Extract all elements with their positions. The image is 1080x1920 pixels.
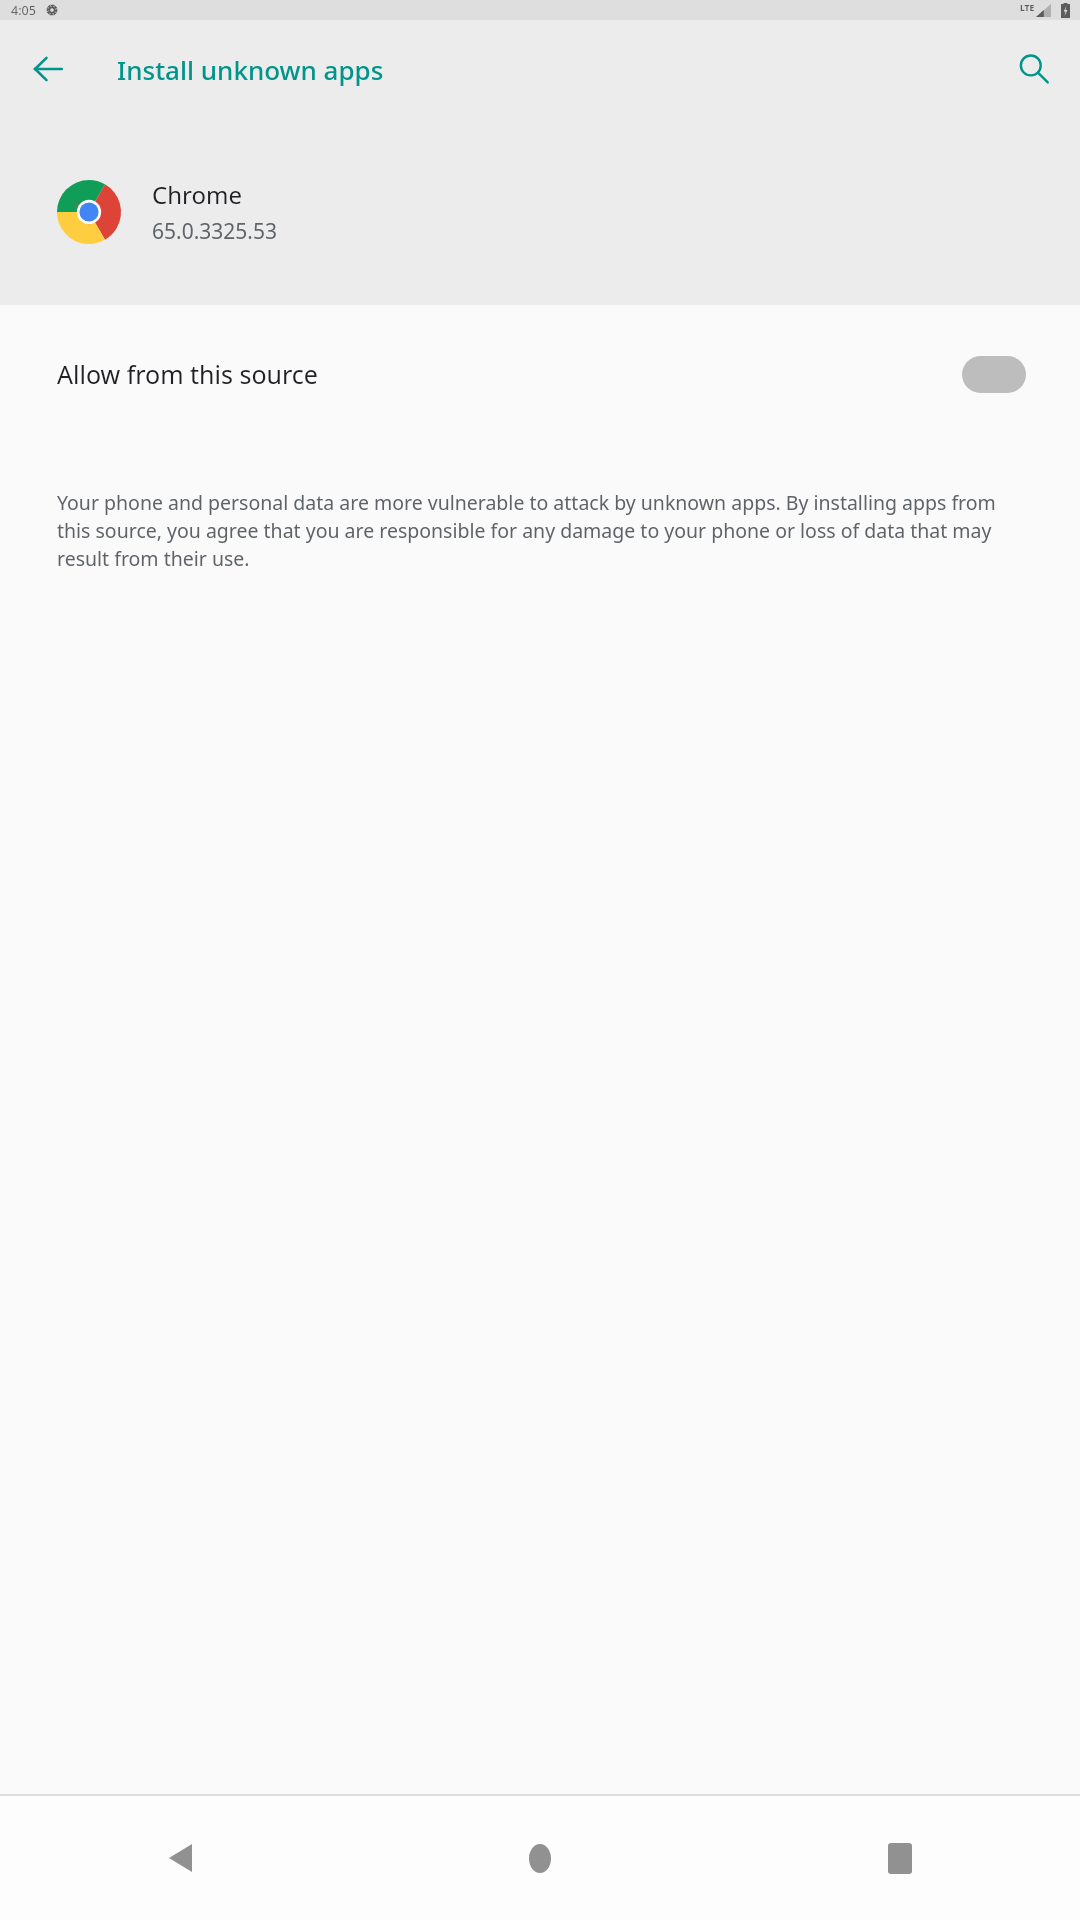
- staticText: Allow from this source: [57, 357, 318, 391]
- button[interactable]: Search: [1006, 41, 1062, 97]
- button[interactable]: Allow from this source: [0, 305, 1080, 443]
- staticText: LTE: [1020, 2, 1035, 14]
- button[interactable]: Back: [144, 1822, 216, 1894]
- staticText: Your phone and personal data are more vu…: [57, 489, 1032, 572]
- staticText: Chrome: [152, 178, 242, 211]
- button[interactable]: Back: [20, 41, 76, 97]
- button[interactable]: Home: [504, 1822, 576, 1894]
- button[interactable]: Recent apps: [864, 1822, 936, 1894]
- staticText: 4:05: [11, 2, 36, 19]
- staticText: 65.0.3325.53: [152, 217, 277, 246]
- staticText: Install unknown apps: [117, 52, 384, 87]
